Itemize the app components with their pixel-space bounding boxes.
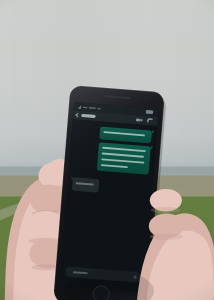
button[interactable]: Phone displaying chat conversation — [0, 0, 214, 300]
